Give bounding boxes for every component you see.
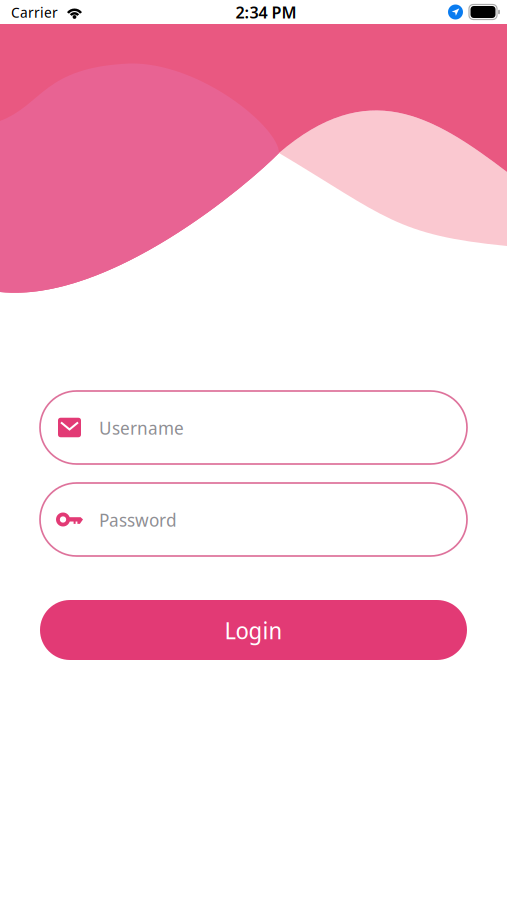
staticText: 2:34 PM	[235, 1, 296, 23]
staticText: Username	[99, 415, 184, 440]
button[interactable]: Password	[40, 483, 467, 556]
button[interactable]: Login	[40, 600, 467, 660]
staticText: Carrier	[11, 2, 58, 22]
staticText: Login	[224, 614, 282, 646]
button[interactable]: Username	[40, 391, 467, 464]
staticText: Password	[99, 507, 177, 532]
